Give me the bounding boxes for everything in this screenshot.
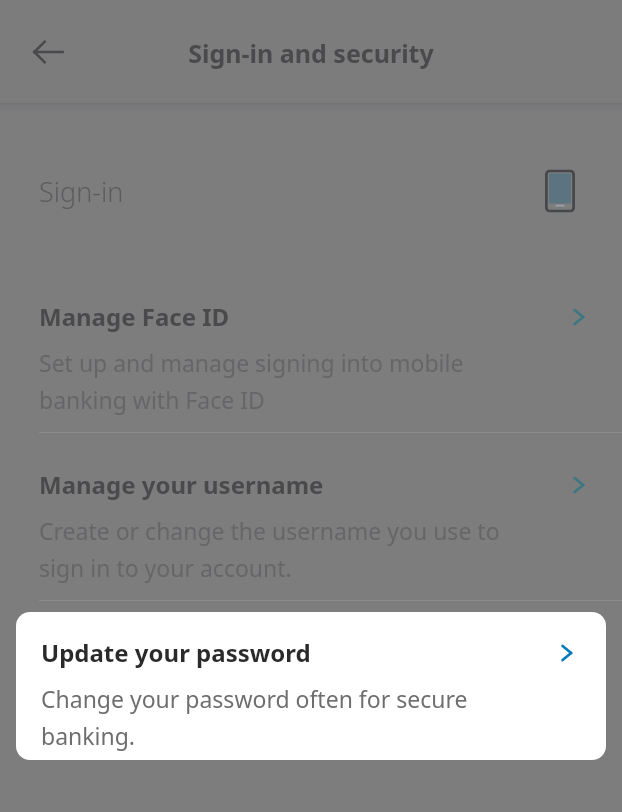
staticText: Change your password often for secure — [41, 683, 468, 714]
staticText: Set up and manage signing into mobile — [39, 347, 464, 378]
staticText: banking. — [41, 720, 136, 751]
staticText: Update your password — [41, 636, 554, 669]
staticText: Create or change the username you use to — [39, 515, 500, 546]
staticText: banking with Face ID — [39, 384, 265, 415]
staticText: Sign-in — [39, 173, 124, 210]
staticText: Manage your username — [39, 468, 566, 501]
staticText: Sign-in and security — [188, 36, 434, 70]
staticText: sign in to your account. — [39, 552, 292, 583]
button[interactable]: Manage your username — [0, 460, 622, 590]
button[interactable]: Update your password — [16, 612, 606, 760]
button[interactable]: Manage Face ID — [0, 292, 622, 422]
other: Mobile device — [543, 166, 577, 216]
staticText: Manage Face ID — [39, 300, 566, 333]
button[interactable]: Back — [20, 24, 76, 80]
